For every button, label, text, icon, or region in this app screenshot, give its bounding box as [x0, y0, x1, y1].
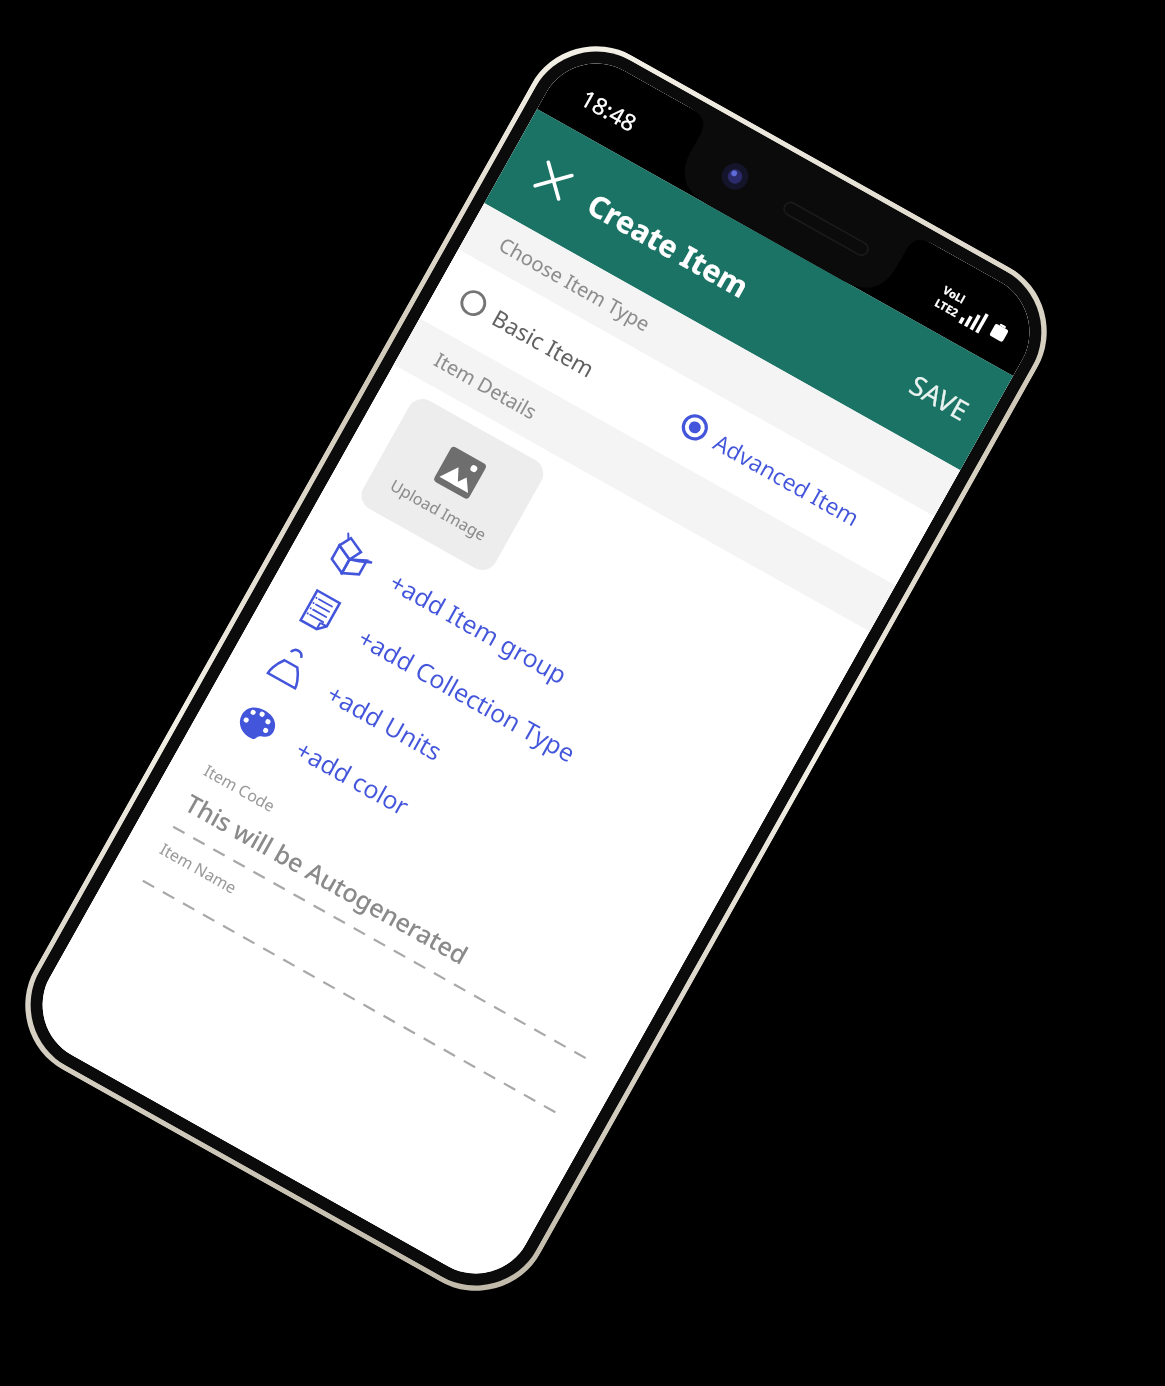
staticText: +add Units	[321, 676, 449, 768]
button[interactable]: SAVE	[877, 343, 1002, 452]
staticText: Item Details	[430, 346, 542, 425]
staticText: SAVE	[903, 366, 976, 429]
staticText: Choose Item Type	[494, 231, 655, 337]
staticText: Item Code	[200, 759, 280, 817]
staticText: +add Collection Type	[353, 620, 582, 769]
button[interactable]: +add Collection Type	[255, 556, 762, 879]
staticText: Upload Image	[386, 474, 491, 546]
button[interactable]: Close	[514, 140, 593, 219]
staticText: 18:48	[576, 82, 642, 138]
staticText: +add Item group	[384, 564, 574, 691]
staticText: Advanced Item	[709, 426, 866, 533]
staticText: +add color	[290, 732, 416, 823]
button[interactable]: +add Units	[223, 612, 731, 935]
button[interactable]: Advanced Item	[649, 388, 926, 571]
button[interactable]: Upload Image	[356, 393, 549, 576]
staticText: Basic Item	[487, 301, 601, 384]
staticText: This will be Autogenerated	[179, 786, 474, 971]
staticText: Item Name	[156, 838, 241, 899]
staticText: VoLl	[940, 282, 969, 307]
staticText: Create Item	[580, 184, 757, 307]
staticText: LTE2	[932, 295, 961, 320]
button[interactable]: Basic Item	[427, 263, 672, 428]
button[interactable]: +add Item group	[286, 500, 793, 823]
button[interactable]: +add color	[192, 668, 699, 991]
